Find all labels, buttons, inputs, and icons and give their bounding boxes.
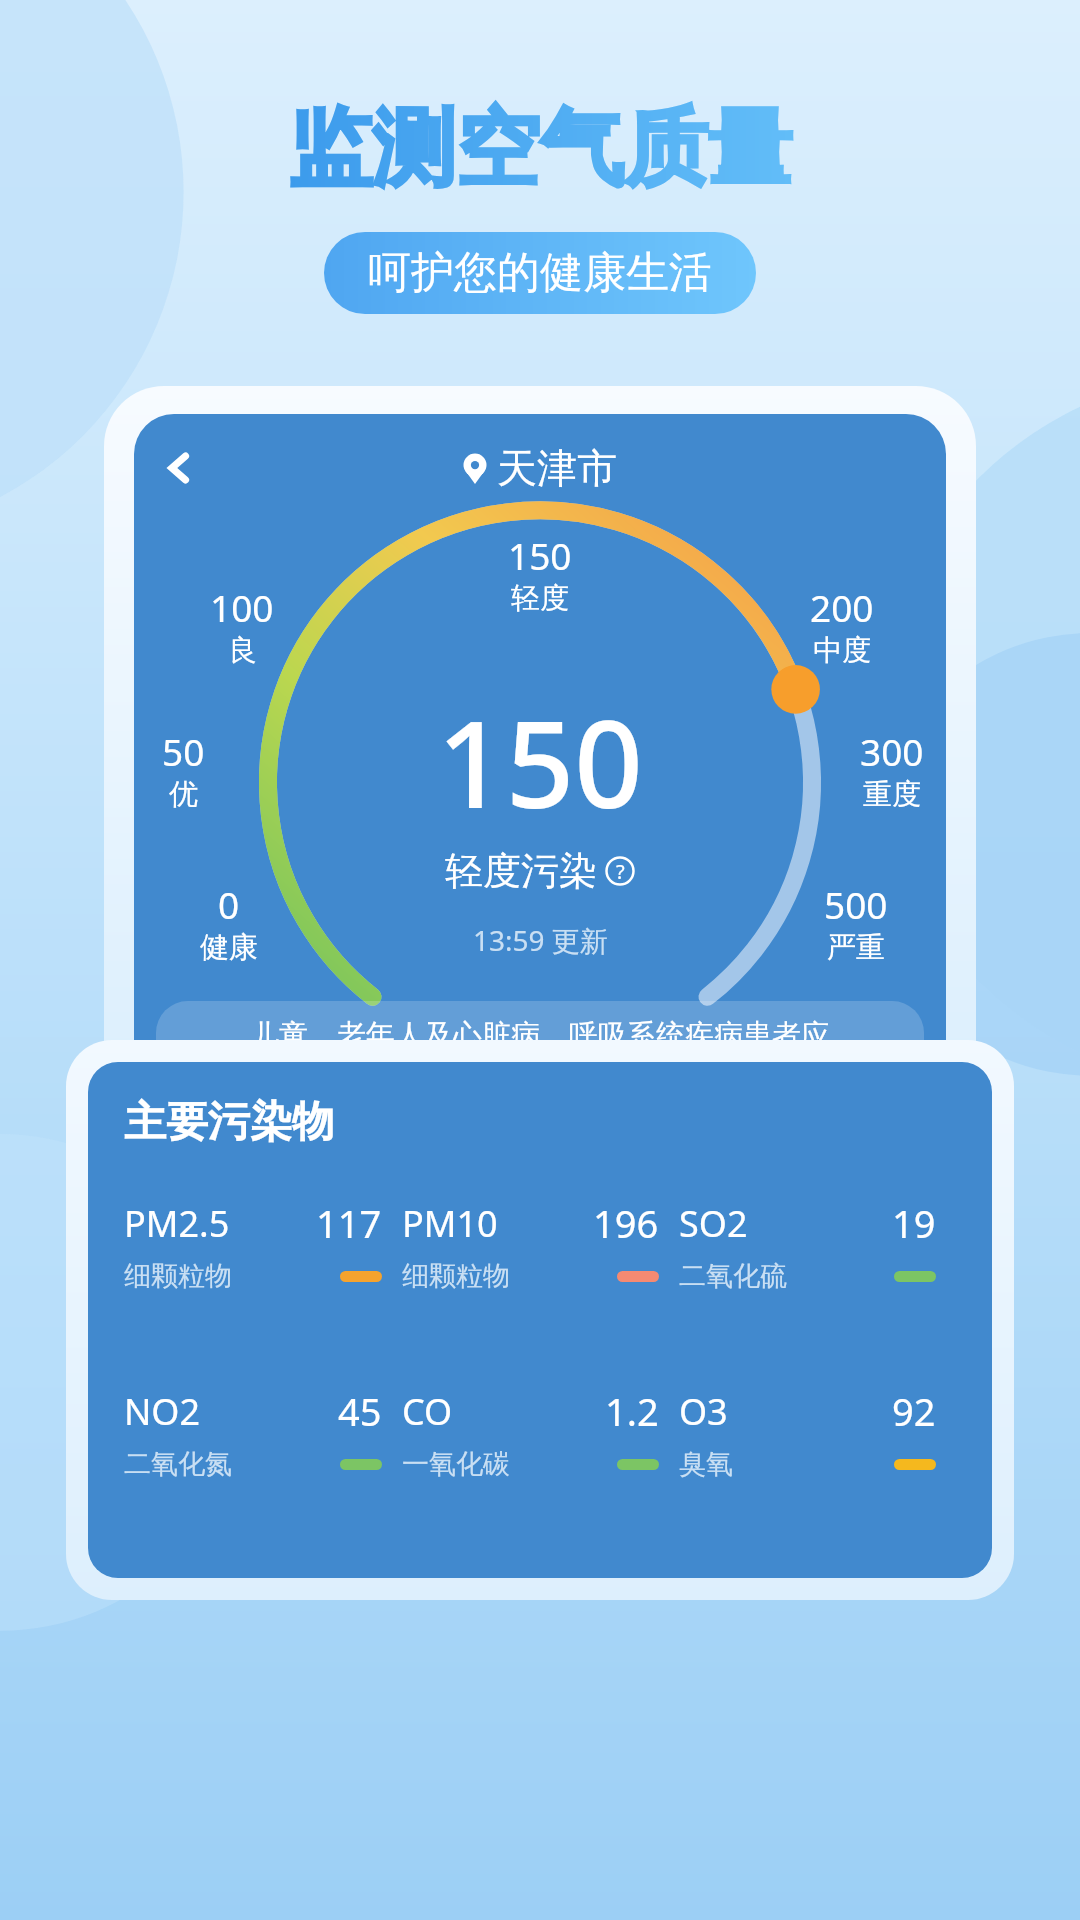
staticText: 轻度 — [511, 580, 569, 617]
staticText: 臭氧 — [679, 1447, 733, 1481]
button[interactable]: Back — [148, 437, 210, 499]
staticText: 天津市 — [497, 443, 617, 493]
staticText: NO2 — [124, 1387, 201, 1436]
staticText: 中度 — [813, 632, 871, 669]
staticText: 健康 — [200, 929, 258, 966]
staticText: 100 — [210, 582, 274, 632]
staticText: 轻度污染 — [445, 847, 597, 895]
staticText: 150 — [437, 680, 643, 843]
staticText: 300 — [860, 726, 924, 776]
staticText: PM2.5 — [124, 1199, 230, 1248]
staticText: 二氧化氮 — [124, 1447, 232, 1481]
staticText: 196 — [593, 1197, 659, 1249]
staticText: PM10 — [402, 1199, 498, 1248]
staticText: 45 — [338, 1385, 382, 1437]
staticText: 严重 — [827, 929, 885, 966]
button[interactable]: 天津市 — [463, 443, 617, 493]
staticText: 0 — [218, 879, 240, 929]
staticText: 优 — [169, 776, 198, 813]
staticText: O3 — [679, 1387, 728, 1436]
staticText: 1.2 — [605, 1385, 659, 1437]
staticText: 13:59 更新 — [473, 921, 608, 959]
staticText: 重度 — [863, 776, 921, 813]
staticText: SO2 — [679, 1199, 748, 1248]
staticText: 一氧化碳 — [402, 1447, 510, 1481]
staticText: 200 — [810, 582, 874, 632]
staticText: 150 — [508, 530, 572, 580]
staticText: 呵护您的健康生活 — [368, 246, 712, 300]
button[interactable]: 儿童、老年人及心脏病、呼吸系统疾病患者应 — [156, 1001, 924, 1076]
staticText: 117 — [316, 1197, 382, 1249]
staticText: ? — [616, 858, 625, 885]
staticText: 监测空气质量 — [288, 96, 792, 202]
staticText: 19 — [892, 1197, 936, 1249]
button[interactable]: 轻度污染 — [445, 847, 635, 895]
staticText: 良 — [228, 632, 257, 669]
staticText: 细颗粒物 — [124, 1259, 232, 1293]
staticText: 500 — [824, 879, 888, 929]
button[interactable]: 呵护您的健康生活 — [324, 232, 756, 314]
staticText: 细颗粒物 — [402, 1259, 510, 1293]
staticText: 主要污染物 — [124, 1096, 334, 1149]
staticText: 儿童、老年人及心脏病、呼吸系统疾病患者应 — [250, 1017, 830, 1054]
staticText: CO — [402, 1387, 453, 1436]
staticText: 50 — [162, 726, 205, 776]
staticText: 二氧化硫 — [679, 1259, 787, 1293]
staticText: 92 — [892, 1385, 936, 1437]
